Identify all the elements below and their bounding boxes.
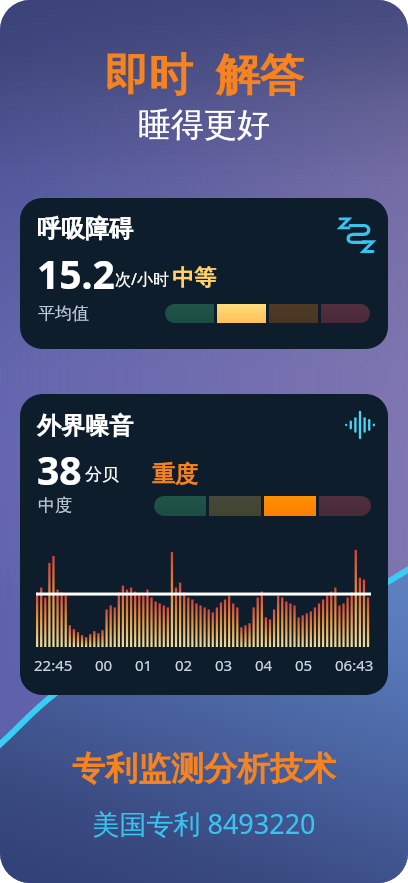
staticText: 专利监测分析技术: [0, 748, 408, 790]
staticText: 睡得更好: [0, 104, 408, 146]
staticText: 次/小时: [115, 268, 169, 290]
staticText: 外界噪音: [37, 411, 133, 441]
staticText: 02: [175, 655, 193, 675]
staticText: 中等: [172, 264, 216, 292]
staticText: 00: [95, 655, 113, 675]
staticText: 中度: [38, 495, 72, 516]
other: Sleep: [338, 212, 376, 250]
staticText: 04: [255, 655, 273, 675]
staticText: 01: [135, 655, 153, 675]
button[interactable]: 外界噪音: [20, 394, 388, 695]
staticText: 分贝: [85, 464, 119, 485]
staticText: 平均值: [38, 303, 89, 324]
staticText: 15.2: [37, 247, 115, 300]
staticText: 03: [215, 655, 233, 675]
staticText: 重度: [152, 460, 198, 489]
staticText: 呼吸障碍: [37, 214, 133, 244]
other: Noise: [345, 410, 375, 440]
button[interactable]: 呼吸障碍: [20, 198, 388, 349]
staticText: 美国专利 8493220: [0, 805, 408, 842]
staticText: 22:45: [34, 655, 73, 675]
staticText: 38: [37, 443, 82, 496]
staticText: 即时 解答: [0, 43, 408, 103]
staticText: 05: [295, 655, 313, 675]
staticText: 06:43: [335, 655, 374, 675]
